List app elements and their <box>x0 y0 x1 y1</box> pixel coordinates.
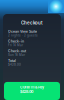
staticText: Confirm & Pay $428.00 <box>20 85 44 94</box>
button[interactable]: Confirm & Pay $428.00 <box>4 82 60 100</box>
staticText: Total <box>8 59 16 63</box>
staticText: Check-in <box>8 39 24 43</box>
staticText: Ocean View Suite <box>8 29 37 34</box>
staticText: Checkout <box>21 20 43 25</box>
staticText: Fri 14 Mar <box>8 43 23 47</box>
staticText: 2 nights · 2 guests <box>8 34 38 37</box>
staticText: Sun 16 Mar <box>8 53 25 57</box>
staticText: $428.00 <box>8 63 21 66</box>
staticText: Check-out <box>8 49 26 53</box>
